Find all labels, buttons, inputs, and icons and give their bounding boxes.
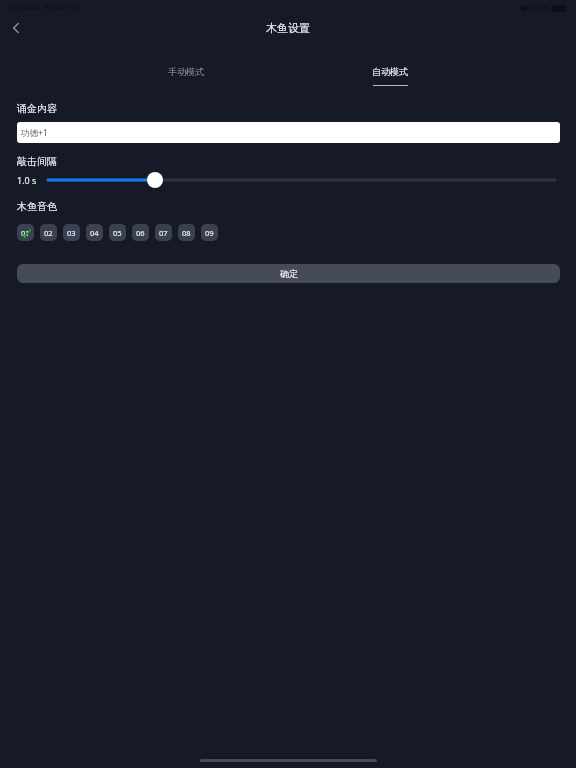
button[interactable]: 功德+1 [17,122,560,143]
button[interactable]: 08 [178,224,195,241]
staticText: 功德+1 [21,127,48,139]
staticText: 手动模式 [168,66,204,77]
button[interactable]: Back [2,14,30,42]
staticText: 木鱼音色 [17,200,57,213]
staticText: 1.0 s [17,174,37,186]
staticText: 05 [113,228,122,238]
staticText: 自动模式 [372,66,408,77]
button[interactable]: 02 [40,224,57,241]
staticText: 08 [182,228,191,238]
staticText: 02 [44,228,53,238]
staticText: 100% [530,3,549,13]
button[interactable]: 09 [201,224,218,241]
staticText: 04 [90,228,99,238]
button[interactable]: 手动模式 [84,66,288,94]
button[interactable]: 01 [17,224,34,241]
staticText: 10:49 AM Fri Oct 14 [8,3,78,13]
staticText: 07 [159,228,168,238]
button[interactable]: 确定 [17,264,560,283]
button[interactable]: 05 [109,224,126,241]
button[interactable]: 04 [86,224,103,241]
staticText: 诵金内容 [17,102,57,115]
button[interactable] [48,170,555,190]
button[interactable]: 07 [155,224,172,241]
button[interactable]: 自动模式 [288,66,492,94]
staticText: 敲击间隔 [17,155,57,168]
staticText: 03 [67,228,76,238]
staticText: 木鱼设置 [266,21,310,35]
staticText: 01 [21,228,30,238]
staticText: 06 [136,228,145,238]
button[interactable]: 06 [132,224,149,241]
button[interactable]: 03 [63,224,80,241]
staticText: 09 [205,228,214,238]
staticText: 确定 [280,268,298,279]
